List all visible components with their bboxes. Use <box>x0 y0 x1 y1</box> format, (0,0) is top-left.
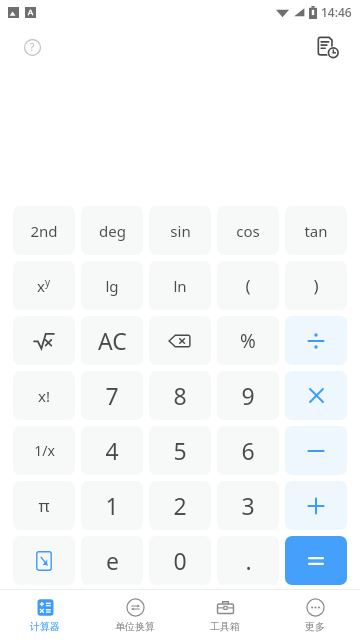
staticText: 4 <box>105 435 119 466</box>
button[interactable]: History <box>310 29 346 65</box>
button[interactable]: . <box>217 536 279 585</box>
staticText: cos <box>236 221 260 241</box>
staticText: x! <box>38 386 50 406</box>
staticText: sin <box>170 221 191 241</box>
button[interactable]: % <box>217 316 279 365</box>
staticText: 5 <box>173 435 187 466</box>
button[interactable]: x! <box>13 371 75 420</box>
button[interactable]: tan <box>285 206 347 255</box>
staticText: 7 <box>105 380 119 411</box>
button[interactable]: cos <box>217 206 279 255</box>
staticText: 8 <box>173 380 187 411</box>
button[interactable]: 0 <box>149 536 211 585</box>
staticText: ln <box>173 276 187 296</box>
staticText: e <box>106 545 119 576</box>
button[interactable]: Square root <box>13 316 75 365</box>
button[interactable]: 2nd <box>13 206 75 255</box>
button[interactable]: 9 <box>217 371 279 420</box>
button[interactable]: e <box>81 536 143 585</box>
button[interactable]: 1 <box>81 481 143 530</box>
staticText: 14:46 <box>321 4 352 20</box>
button[interactable]: 计算器 <box>0 590 90 640</box>
staticText: 2 <box>173 490 187 521</box>
button[interactable]: Equals <box>285 536 347 585</box>
staticText: AC <box>98 325 127 356</box>
button[interactable]: Backspace <box>149 316 211 365</box>
button[interactable]: lg <box>81 261 143 310</box>
button[interactable]: 5 <box>149 426 211 475</box>
button[interactable]: ln <box>149 261 211 310</box>
staticText: deg <box>99 221 126 241</box>
button[interactable]: x <box>13 261 75 310</box>
staticText: 工具箱 <box>210 620 240 633</box>
staticText: ? <box>30 40 35 54</box>
staticText: 0 <box>173 545 187 576</box>
button[interactable]: 4 <box>81 426 143 475</box>
button[interactable]: 8 <box>149 371 211 420</box>
staticText: 更多 <box>305 620 325 633</box>
button[interactable]: 更多 <box>270 590 360 640</box>
button[interactable]: Minus <box>285 426 347 475</box>
button[interactable]: Collapse keypad <box>13 536 75 585</box>
staticText: y <box>45 275 51 289</box>
button[interactable]: Multiply <box>285 371 347 420</box>
button[interactable]: 2 <box>149 481 211 530</box>
button[interactable]: ) <box>285 261 347 310</box>
button[interactable]: Plus <box>285 481 347 530</box>
staticText: 6 <box>241 435 255 466</box>
button[interactable]: AC <box>81 316 143 365</box>
staticText: 单位换算 <box>115 620 155 633</box>
staticText: π <box>38 494 50 517</box>
button[interactable]: ( <box>217 261 279 310</box>
staticText: 1/x <box>34 441 55 460</box>
button[interactable]: Help <box>16 31 48 63</box>
staticText: x <box>37 276 45 296</box>
staticText: 9 <box>241 380 255 411</box>
button[interactable]: 3 <box>217 481 279 530</box>
staticText: ( <box>245 274 251 297</box>
staticText: lg <box>105 276 119 296</box>
staticText: 3 <box>241 490 255 521</box>
button[interactable]: Divide <box>285 316 347 365</box>
staticText: 2nd <box>30 221 58 241</box>
button[interactable]: sin <box>149 206 211 255</box>
button[interactable]: deg <box>81 206 143 255</box>
staticText: . <box>245 545 252 576</box>
button[interactable]: 7 <box>81 371 143 420</box>
staticText: ) <box>313 274 319 297</box>
button[interactable]: 工具箱 <box>180 590 270 640</box>
staticText: 1 <box>105 490 119 521</box>
button[interactable]: 6 <box>217 426 279 475</box>
staticText: tan <box>304 221 328 241</box>
staticText: 计算器 <box>30 620 60 633</box>
staticText: % <box>240 328 256 354</box>
button[interactable]: 单位换算 <box>90 590 180 640</box>
button[interactable]: π <box>13 481 75 530</box>
button[interactable]: 1/x <box>13 426 75 475</box>
